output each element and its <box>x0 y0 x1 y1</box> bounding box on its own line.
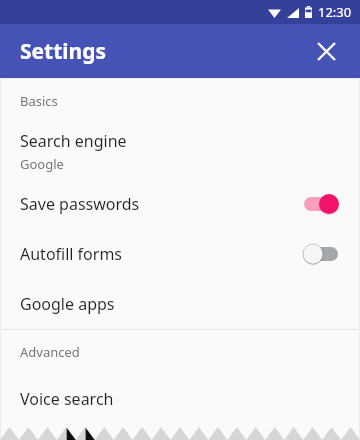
staticText: Google <box>20 155 64 173</box>
staticText: 12:30 <box>318 3 352 21</box>
button[interactable]: Search engine <box>0 123 360 179</box>
button[interactable]: Save passwords <box>0 179 360 229</box>
button[interactable]: Close <box>306 31 346 71</box>
button[interactable]: Google apps <box>0 279 360 329</box>
staticText: Voice search <box>20 388 114 410</box>
staticText: Autofill forms <box>20 243 298 265</box>
staticText: Basics <box>20 92 58 110</box>
staticText: Advanced <box>20 343 80 361</box>
staticText: Save passwords <box>20 193 298 215</box>
button[interactable]: Autofill forms <box>0 229 360 279</box>
staticText: Search engine <box>20 130 127 152</box>
staticText: Google apps <box>20 293 115 315</box>
staticText: Settings <box>20 37 107 66</box>
button[interactable]: Voice search <box>0 374 360 424</box>
